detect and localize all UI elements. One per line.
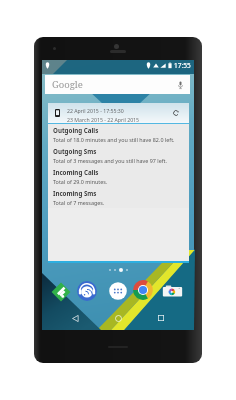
staticText: Outgoing Calls [53,126,99,134]
staticText: Total of 3 messages and you still have 9… [53,157,167,164]
button[interactable]: Feedly [50,281,72,303]
button[interactable]: Outgoing Calls [48,124,189,145]
button[interactable]: Refresh [172,109,180,117]
button[interactable]: Outgoing Sms [48,145,189,166]
staticText: Total of 29.0 minutes. [53,178,108,185]
staticText: Outgoing Sms [53,147,97,155]
button[interactable]: Apps [109,282,127,300]
button[interactable]: Google [45,75,190,94]
staticText: Total of 18.0 minutes and you still have… [53,136,175,143]
button[interactable]: Chrome [132,279,154,301]
button[interactable]: Home [108,308,128,328]
staticText: Total of 7 messages. [53,199,105,206]
button[interactable]: Back [65,308,85,328]
button[interactable]: Incoming Calls [48,166,189,187]
staticText: 17:55 [174,61,191,70]
staticText: Google [52,78,83,91]
button[interactable]: 22 April 2015 - 17:55:30 [48,103,189,123]
button[interactable]: Camera [162,281,183,302]
staticText: 23 March 2015 - 22 April 2015 [67,116,140,123]
button[interactable]: Podcasts [76,280,98,302]
staticText: Incoming Calls [53,168,99,176]
staticText: Incoming Sms [53,189,97,197]
staticText: 22 April 2015 - 17:55:30 [67,107,124,114]
button[interactable]: Recents [151,308,171,328]
button[interactable]: Incoming Sms [48,187,189,208]
